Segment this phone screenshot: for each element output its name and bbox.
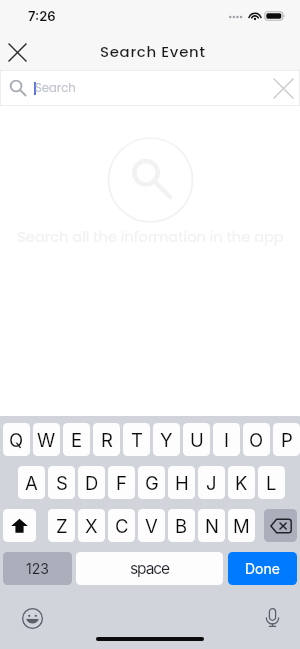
button[interactable]: Q — [3, 423, 30, 456]
staticText: 7:26 — [28, 8, 56, 24]
staticText: Search — [35, 80, 76, 96]
staticText: W — [37, 429, 56, 451]
button[interactable]: J — [198, 466, 225, 499]
button[interactable]: D — [78, 466, 105, 499]
staticText: K — [235, 472, 248, 494]
button[interactable]: Clear search — [265, 71, 300, 105]
staticText: Search all the information in the app — [17, 227, 284, 247]
staticText: H — [175, 472, 189, 494]
staticText: Y — [160, 429, 173, 451]
staticText: G — [145, 472, 159, 494]
staticText: S — [56, 472, 68, 494]
button[interactable]: Emoji keyboard — [14, 600, 50, 636]
button[interactable]: K — [228, 466, 255, 499]
button[interactable]: S — [48, 466, 75, 499]
button[interactable]: Z — [48, 509, 75, 542]
button[interactable]: Voice input — [255, 599, 290, 635]
button[interactable]: B — [168, 509, 195, 542]
button[interactable]: R — [93, 423, 120, 456]
staticText: O — [249, 429, 264, 451]
button[interactable]: E — [63, 423, 90, 456]
button[interactable]: Shift — [3, 509, 36, 542]
button[interactable]: W — [33, 423, 60, 456]
staticText: J — [206, 472, 217, 494]
button[interactable]: M — [228, 509, 255, 542]
button[interactable]: C — [108, 509, 135, 542]
staticText: N — [205, 515, 219, 537]
button[interactable]: A — [18, 466, 45, 499]
button[interactable]: T — [123, 423, 150, 456]
staticText: R — [101, 429, 113, 451]
staticText: E — [71, 429, 83, 451]
staticText: T — [131, 429, 143, 451]
button[interactable]: U — [183, 423, 210, 456]
button[interactable]: Y — [153, 423, 180, 456]
button[interactable]: space — [76, 552, 223, 585]
staticText: I — [224, 429, 229, 451]
staticText: F — [116, 472, 127, 494]
button[interactable]: L — [258, 466, 285, 499]
button[interactable]: Backspace — [264, 509, 297, 542]
button[interactable]: H — [168, 466, 195, 499]
staticText: M — [233, 515, 250, 537]
staticText: D — [85, 472, 99, 494]
staticText: B — [175, 515, 188, 537]
button[interactable]: Done — [228, 552, 297, 585]
staticText: X — [85, 515, 98, 537]
button[interactable]: P — [273, 423, 300, 456]
staticText: C — [115, 515, 129, 537]
button[interactable]: F — [108, 466, 135, 499]
staticText: Search Event — [100, 41, 206, 62]
button[interactable]: N — [198, 509, 225, 542]
staticText: P — [281, 429, 293, 451]
staticText: Done — [245, 560, 280, 577]
button[interactable]: O — [243, 423, 270, 456]
staticText: U — [190, 429, 204, 451]
button[interactable]: G — [138, 466, 165, 499]
button[interactable]: Close — [0, 34, 35, 71]
staticText: Q — [9, 429, 24, 451]
staticText: 123 — [26, 560, 49, 577]
button[interactable]: X — [78, 509, 105, 542]
button[interactable]: 123 — [3, 552, 72, 585]
staticText: V — [145, 515, 158, 537]
staticText: space — [130, 559, 169, 578]
button[interactable]: I — [213, 423, 240, 456]
staticText: L — [266, 472, 277, 494]
staticText: A — [25, 472, 38, 494]
staticText: Z — [56, 515, 68, 537]
button[interactable]: V — [138, 509, 165, 542]
